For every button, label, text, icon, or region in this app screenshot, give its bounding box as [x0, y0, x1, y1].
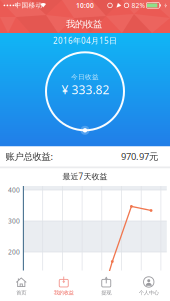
staticText: 我的收益	[54, 289, 74, 296]
staticText: 中国移动	[14, 1, 42, 9]
button[interactable]: 我的收益	[42, 271, 85, 301]
button[interactable]: 提现	[85, 271, 127, 301]
staticText: 200	[8, 248, 20, 256]
staticText: 提现	[101, 289, 111, 296]
staticText: 账户总收益:	[5, 150, 53, 162]
staticText: 最近7天收益	[62, 171, 107, 182]
staticText: 970.97元	[121, 150, 158, 162]
staticText: 400	[8, 186, 20, 194]
staticText: 300	[8, 217, 20, 225]
button[interactable]: 首页	[0, 271, 42, 301]
staticText: 82%	[131, 1, 145, 10]
staticText: 首页	[16, 289, 26, 296]
staticText: 10:00	[76, 1, 94, 10]
staticText: ¥ 333.82	[61, 81, 109, 97]
staticText: 个人中心	[139, 289, 159, 296]
staticText: 今日收益	[71, 73, 99, 81]
staticText: 2016年04月15日	[53, 35, 117, 46]
staticText: 我的收益	[66, 18, 102, 30]
button[interactable]: 个人中心	[127, 271, 170, 301]
